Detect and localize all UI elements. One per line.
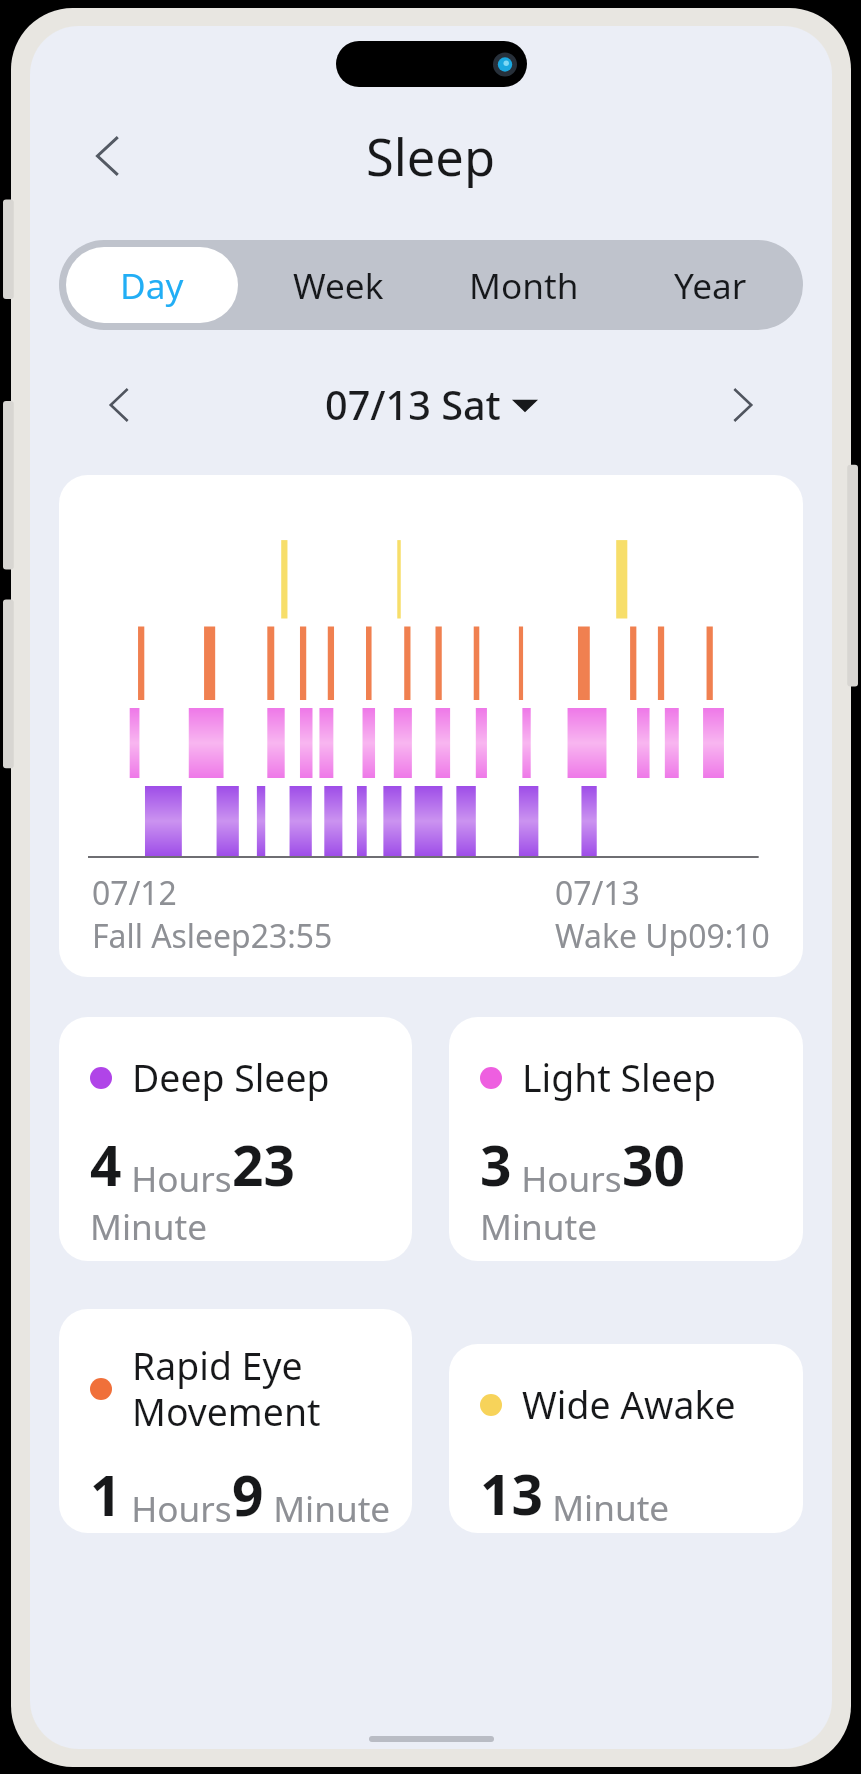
button[interactable]: 07/13 Sat (162, 356, 700, 453)
staticText: Day (120, 261, 184, 309)
button[interactable]: Week (252, 247, 424, 323)
staticText: 9 (232, 1457, 264, 1532)
staticText: Week (293, 261, 384, 309)
staticText: 07/13 (555, 871, 640, 914)
staticText: Minute (480, 1202, 598, 1250)
staticText: Month (469, 261, 579, 309)
staticText: Minute (264, 1484, 391, 1532)
staticText: Hours (512, 1154, 622, 1202)
button[interactable]: Day (66, 247, 238, 323)
staticText: Sleep (366, 122, 496, 191)
staticText: 07/13 Sat (325, 378, 501, 432)
staticText: Minute (543, 1483, 670, 1531)
staticText: Rapid Eye Movement (132, 1340, 321, 1437)
staticText: 30 (622, 1127, 685, 1202)
staticText: 4 (90, 1127, 122, 1202)
button[interactable]: Back (65, 114, 153, 198)
staticText: 23 (232, 1127, 295, 1202)
staticText: 1 (90, 1457, 122, 1532)
button[interactable]: Month (438, 247, 610, 323)
staticText: Year (674, 261, 747, 309)
button[interactable]: Rapid Eye Movement (59, 1309, 412, 1533)
button[interactable]: Deep Sleep (59, 1017, 412, 1261)
staticText: Minute (90, 1202, 208, 1250)
staticText: Deep Sleep (132, 1052, 330, 1103)
staticText: Hours (122, 1154, 232, 1202)
staticText: Fall Asleep23:55 (92, 914, 333, 957)
staticText: Light Sleep (522, 1052, 716, 1103)
staticText: 13 (480, 1456, 543, 1531)
staticText: Wide Awake (522, 1379, 736, 1430)
button[interactable]: Wide Awake (449, 1344, 803, 1533)
staticText: Wake Up09:10 (555, 914, 770, 957)
staticText: 3 (480, 1127, 512, 1202)
button[interactable]: Next day (700, 363, 784, 447)
button[interactable]: Year (624, 247, 796, 323)
button[interactable]: Previous day (78, 363, 162, 447)
button[interactable]: Light Sleep (449, 1017, 803, 1261)
staticText: Hours (122, 1484, 232, 1532)
staticText: 07/12 (92, 871, 177, 914)
